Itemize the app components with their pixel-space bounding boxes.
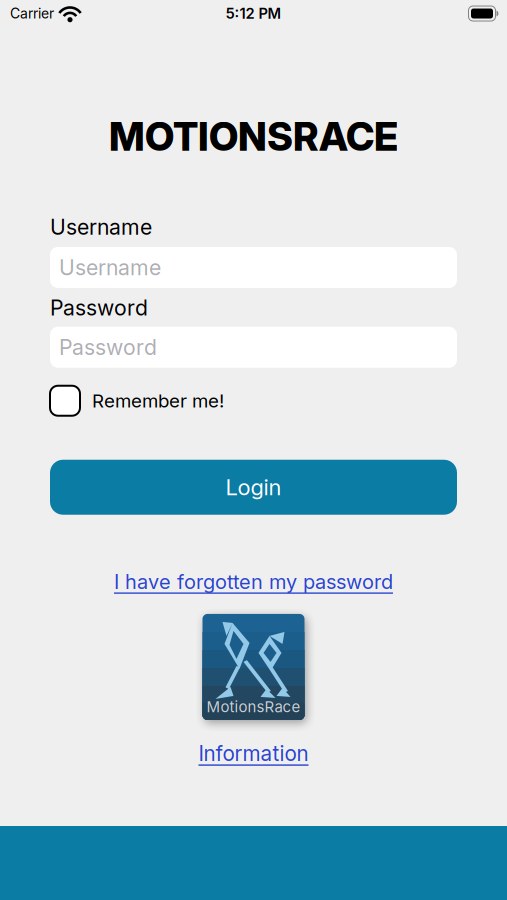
staticText: MOTIONSRACE bbox=[109, 113, 398, 160]
button[interactable]: Remember me! bbox=[50, 386, 224, 416]
button[interactable]: Information bbox=[198, 741, 308, 766]
staticText: Password bbox=[50, 295, 148, 321]
button[interactable]: Password text field bbox=[50, 327, 457, 368]
staticText: Password bbox=[59, 334, 157, 360]
staticText: Login bbox=[225, 474, 281, 500]
staticText: MotionsRace bbox=[206, 698, 300, 716]
button[interactable]: I have forgotten my password bbox=[114, 570, 393, 594]
staticText: Username bbox=[59, 255, 161, 280]
button[interactable]: MotionsRace logo bbox=[202, 614, 304, 720]
staticText: Username bbox=[50, 214, 152, 240]
staticText: Information bbox=[198, 741, 308, 766]
button[interactable]: Username text field bbox=[50, 247, 457, 288]
staticText: I have forgotten my password bbox=[114, 570, 393, 594]
button[interactable]: Login bbox=[50, 460, 457, 515]
staticText: Remember me! bbox=[92, 389, 224, 412]
staticText: Carrier bbox=[10, 5, 54, 22]
staticText: 5:12 PM bbox=[225, 5, 281, 22]
